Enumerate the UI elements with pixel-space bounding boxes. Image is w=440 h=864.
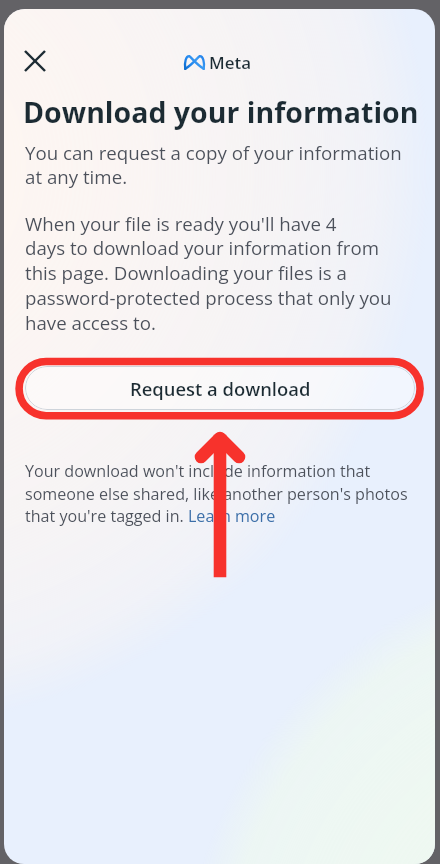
staticText: Request a download [130,376,311,401]
staticText: You can request a copy of your informati… [25,140,402,190]
staticText: Meta [209,51,252,74]
staticText: When your file is ready you'll have 4 da… [25,211,392,336]
staticText: Your download won't include information … [25,460,408,526]
button[interactable]: Request a download [25,366,415,410]
staticText: Download your information [23,93,419,132]
button[interactable]: Close [13,39,57,83]
